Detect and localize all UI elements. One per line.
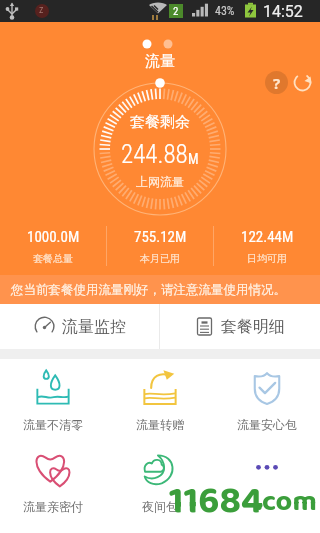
- staticText: z: [39, 4, 44, 16]
- button[interactable]: More: [213, 441, 320, 523]
- staticText: 11684: [169, 471, 264, 532]
- staticText: 流量不清零: [23, 417, 83, 432]
- staticText: 1000.0M: [27, 228, 80, 246]
- staticText: 755.12M: [134, 228, 187, 246]
- staticText: ?: [273, 73, 281, 93]
- button[interactable]: 流量亲密付: [0, 441, 106, 523]
- staticText: 夜间包: [142, 499, 178, 514]
- staticText: 流量转赠: [136, 417, 184, 432]
- staticText: 122.44M: [241, 228, 294, 246]
- staticText: M: [188, 151, 199, 167]
- button[interactable]: Help: [265, 71, 288, 94]
- button[interactable]: 流量转赠: [106, 359, 213, 441]
- staticText: 套餐明细: [221, 317, 285, 337]
- staticText: 上网流量: [136, 174, 184, 189]
- staticText: 本月已用: [140, 252, 180, 265]
- staticText: 流量: [145, 52, 175, 71]
- staticText: 套餐总量: [33, 252, 73, 265]
- staticText: 流量亲密付: [23, 499, 83, 514]
- button[interactable]: 1000.0M: [0, 225, 106, 267]
- button[interactable]: Refresh: [291, 71, 314, 94]
- button[interactable]: 流量监控: [0, 304, 159, 349]
- staticText: 244.88: [121, 140, 188, 169]
- staticText: 43%: [215, 4, 235, 18]
- button[interactable]: 122.44M: [214, 225, 320, 267]
- button[interactable]: 755.12M: [107, 225, 213, 267]
- staticText: 2: [173, 5, 179, 18]
- staticText: 日均可用: [247, 252, 287, 265]
- staticText: 流量监控: [62, 317, 126, 337]
- button[interactable]: 夜间包: [106, 441, 213, 523]
- button[interactable]: 套餐明细: [160, 304, 320, 349]
- staticText: 流量安心包: [237, 417, 297, 432]
- button[interactable]: 流量安心包: [213, 359, 320, 441]
- staticText: 14:52: [263, 2, 303, 21]
- staticText: .com: [256, 479, 317, 525]
- staticText: 您当前套餐使用流量刚好，请注意流量使用情况。: [11, 282, 286, 298]
- staticText: 套餐剩余: [130, 113, 190, 132]
- button[interactable]: 流量不清零: [0, 359, 106, 441]
